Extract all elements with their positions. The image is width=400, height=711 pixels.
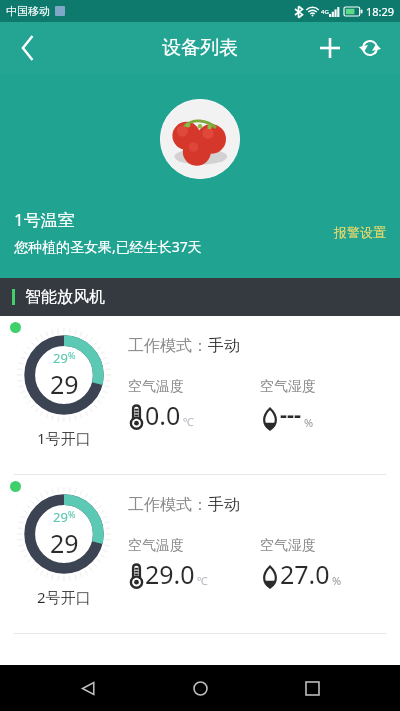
button[interactable]: Refresh — [350, 28, 390, 68]
staticText: 手动 — [208, 495, 240, 515]
button[interactable]: Back — [70, 670, 106, 706]
staticText: 设备列表 — [162, 36, 238, 60]
staticText: 报警设置 — [334, 224, 386, 240]
button[interactable]: 报警设置 — [330, 220, 390, 244]
staticText: 18:29 — [366, 4, 395, 19]
staticText: 1号开口 — [37, 428, 91, 448]
staticText: 29 — [50, 367, 79, 401]
button[interactable]: 29 — [0, 316, 400, 474]
staticText: 中国移动 — [6, 4, 50, 18]
staticText: 工作模式： — [128, 336, 208, 356]
staticText: % — [68, 508, 76, 520]
staticText: 空气温度 — [128, 537, 184, 555]
staticText: 29.0 — [145, 557, 195, 591]
staticText: 29 — [50, 526, 79, 560]
button[interactable]: Recent apps — [294, 670, 330, 706]
staticText: 1号温室 — [14, 208, 75, 231]
button[interactable]: Back — [8, 28, 48, 68]
staticText: 您种植的圣女果,已经生长37天 — [14, 237, 202, 256]
staticText: % — [332, 573, 342, 588]
button[interactable]: Home — [182, 670, 218, 706]
staticText: 29 — [53, 508, 68, 526]
staticText: 29 — [53, 349, 68, 367]
staticText: 2号开口 — [37, 587, 91, 607]
staticText: % — [304, 415, 314, 430]
staticText: 空气温度 — [128, 378, 184, 396]
staticText: 智能放风机 — [25, 287, 105, 307]
staticText: 0.0 — [145, 398, 181, 432]
staticText: 手动 — [208, 336, 240, 356]
staticText: 工作模式： — [128, 495, 208, 515]
staticText: 空气湿度 — [260, 537, 316, 555]
staticText: 4G — [321, 8, 329, 16]
staticText: 空气湿度 — [260, 378, 316, 396]
staticText: --- — [280, 398, 302, 428]
staticText: % — [68, 349, 76, 361]
button[interactable]: 29 — [0, 475, 400, 633]
button[interactable]: Add device — [310, 28, 350, 68]
staticText: ℃ — [183, 414, 194, 429]
staticText: ℃ — [197, 573, 208, 588]
staticText: 27.0 — [280, 557, 330, 591]
